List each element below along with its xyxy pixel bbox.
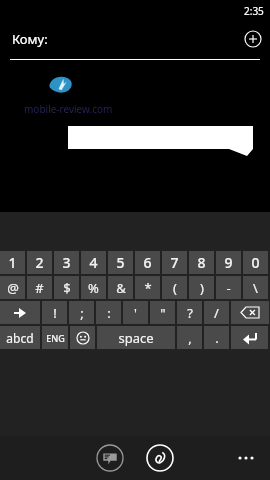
- button[interactable]: Enter: [231, 326, 268, 349]
- button[interactable]: 5: [108, 251, 133, 274]
- button[interactable]: 9: [216, 251, 241, 274]
- staticText: abcd: [6, 330, 34, 346]
- button[interactable]: 3: [54, 251, 79, 274]
- button[interactable]: ": [150, 301, 175, 324]
- staticText: #: [35, 279, 44, 297]
- button[interactable]: 6: [135, 251, 160, 274]
- staticText: \: [253, 279, 258, 297]
- button[interactable]: Attach: [146, 444, 174, 472]
- staticText: 6: [143, 253, 152, 272]
- button[interactable]: %: [81, 276, 106, 299]
- staticText: (: [173, 279, 177, 297]
- button[interactable]: Backspace: [231, 301, 269, 324]
- staticText: 4: [89, 253, 98, 272]
- staticText: space: [118, 329, 154, 347]
- button[interactable]: 4: [81, 251, 106, 274]
- staticText: %: [88, 279, 99, 297]
- staticText: :: [107, 304, 111, 322]
- button[interactable]: space: [97, 326, 175, 349]
- staticText: $: [63, 279, 71, 297]
- button[interactable]: ): [189, 276, 214, 299]
- button[interactable]: /: [204, 301, 229, 324]
- staticText: ": [160, 304, 166, 322]
- staticText: /: [214, 304, 219, 322]
- button[interactable]: !: [42, 301, 67, 324]
- staticText: @: [7, 279, 19, 297]
- button[interactable]: Add contact: [244, 30, 262, 48]
- button[interactable]: Next: [0, 301, 40, 324]
- staticText: ,: [188, 329, 192, 347]
- staticText: 2: [35, 253, 44, 272]
- button[interactable]: @: [0, 276, 25, 299]
- button[interactable]: :: [96, 301, 121, 324]
- button[interactable]: ': [123, 301, 148, 324]
- button[interactable]: abcd: [0, 326, 40, 349]
- staticText: ;: [80, 304, 84, 322]
- staticText: 3: [62, 253, 71, 272]
- button[interactable]: ?: [177, 301, 202, 324]
- button[interactable]: ;: [69, 301, 94, 324]
- button[interactable]: (: [162, 276, 187, 299]
- staticText: 8: [197, 253, 206, 272]
- staticText: 2:35: [244, 4, 264, 18]
- button[interactable]: #: [27, 276, 52, 299]
- button[interactable]: *: [135, 276, 160, 299]
- staticText: &: [116, 279, 126, 297]
- staticText: ): [200, 279, 204, 297]
- staticText: *: [144, 279, 152, 297]
- staticText: 5: [116, 253, 125, 272]
- button[interactable]: 7: [162, 251, 187, 274]
- button[interactable]: 0: [243, 251, 268, 274]
- button[interactable]: &: [108, 276, 133, 299]
- button[interactable]: -: [216, 276, 241, 299]
- staticText: 9: [224, 253, 233, 272]
- staticText: .: [215, 329, 219, 347]
- button[interactable]: 2: [27, 251, 52, 274]
- button[interactable]: ENG: [42, 326, 68, 349]
- staticText: ': [134, 304, 137, 322]
- button[interactable]: $: [54, 276, 79, 299]
- staticText: mobile-review.com: [24, 102, 113, 116]
- button[interactable]: More options: [234, 446, 258, 470]
- staticText: -: [226, 279, 231, 297]
- button[interactable]: 1: [0, 251, 25, 274]
- staticText: ?: [187, 304, 193, 322]
- staticText: 1: [8, 253, 17, 272]
- button[interactable]: 8: [189, 251, 214, 274]
- button[interactable]: .: [204, 326, 229, 349]
- button[interactable]: Emoji: [70, 326, 95, 349]
- staticText: !: [53, 304, 57, 322]
- staticText: 0: [251, 253, 260, 272]
- button[interactable]: Send message: [96, 444, 124, 472]
- button[interactable]: [68, 126, 253, 156]
- button[interactable]: ,: [177, 326, 202, 349]
- staticText: ENG: [46, 332, 65, 344]
- button[interactable]: \: [243, 276, 268, 299]
- staticText: 7: [170, 253, 179, 272]
- staticText: Кому:: [12, 30, 48, 48]
